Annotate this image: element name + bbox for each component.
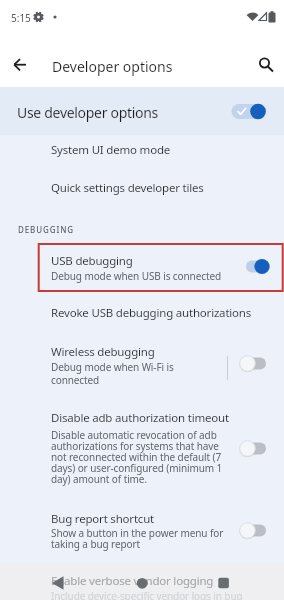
staticText: Debug mode when USB is connected xyxy=(51,269,221,283)
button[interactable] xyxy=(0,173,284,211)
staticText: DEBUGGING xyxy=(18,224,75,235)
staticText: Use developer options xyxy=(17,103,158,122)
button[interactable] xyxy=(207,569,241,597)
staticText: Revoke USB debugging authorizations xyxy=(51,305,252,321)
staticText: Disable automatic revocation of adb auth… xyxy=(51,428,223,486)
button[interactable] xyxy=(0,294,284,336)
staticText: Quick settings developer tiles xyxy=(51,180,204,196)
staticText: Bug report shortcut xyxy=(51,511,155,527)
button[interactable] xyxy=(125,569,159,597)
staticText: USB debugging xyxy=(51,253,133,269)
button[interactable] xyxy=(0,241,284,294)
button[interactable] xyxy=(0,87,284,135)
button[interactable] xyxy=(0,500,284,554)
button[interactable] xyxy=(0,396,284,488)
button[interactable] xyxy=(0,338,284,390)
staticText: Disable adb authorization timeout xyxy=(51,410,229,426)
staticText: Debug mode when Wi-Fi is connected xyxy=(51,360,174,387)
staticText: Developer options xyxy=(52,57,173,76)
staticText: Include device-specific vendor logs in b… xyxy=(51,589,243,600)
staticText: Enable verbose vendor logging xyxy=(51,573,214,589)
staticText: Show a button in the power menu for taki… xyxy=(51,526,224,551)
button[interactable] xyxy=(41,569,75,597)
staticText: Wireless debugging xyxy=(51,344,155,360)
button[interactable] xyxy=(250,49,280,79)
button[interactable] xyxy=(0,135,284,173)
staticText: System UI demo mode xyxy=(51,142,171,158)
button[interactable] xyxy=(6,50,36,80)
staticText: 5:15 xyxy=(11,11,31,25)
